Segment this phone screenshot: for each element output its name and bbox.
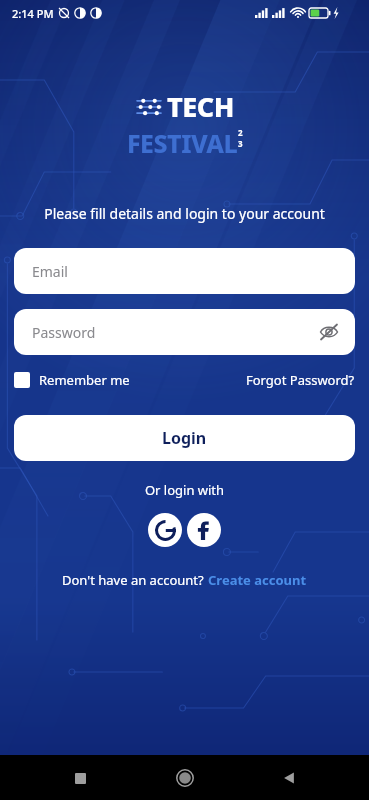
button[interactable]: Home xyxy=(165,758,205,798)
button[interactable]: Login xyxy=(14,415,355,461)
staticText: Forgot Password? xyxy=(246,371,355,389)
button[interactable]: Remember me xyxy=(14,371,130,389)
staticText: Don't have an account? xyxy=(62,571,208,589)
button[interactable]: Recent apps xyxy=(60,758,100,798)
button[interactable]: Back xyxy=(269,758,309,798)
staticText: Login xyxy=(162,427,207,449)
staticText: Password xyxy=(32,323,96,342)
staticText: Remember me xyxy=(39,371,130,389)
staticText: Or login with xyxy=(0,481,369,499)
staticText: Create account xyxy=(208,571,307,589)
staticText: 2:14 PM xyxy=(12,6,54,21)
staticText: Please fill details and login to your ac… xyxy=(0,204,369,223)
staticText: 3 xyxy=(238,138,243,149)
button[interactable]: Login with Google xyxy=(148,513,182,547)
button[interactable]: Email xyxy=(14,248,355,294)
staticText: TECH xyxy=(167,88,234,125)
button[interactable]: Login with Facebook xyxy=(187,513,221,547)
button[interactable]: Forgot Password? xyxy=(246,371,355,389)
button[interactable]: Show password xyxy=(315,318,343,346)
button[interactable]: Password xyxy=(14,309,355,355)
button[interactable]: Create account xyxy=(208,571,307,589)
staticText: Email xyxy=(32,262,68,281)
staticText: 2 xyxy=(238,127,243,138)
staticText: FESTIVAL xyxy=(127,126,238,160)
